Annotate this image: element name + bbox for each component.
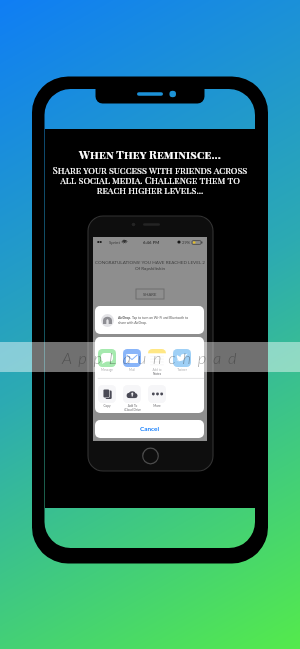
staticText: share with AirDrop. [118, 321, 147, 325]
staticText: Of Rapskiltskin [93, 265, 207, 271]
staticText: Cancel [140, 425, 160, 433]
staticText: 29% [182, 240, 191, 245]
staticText: Sprint [109, 240, 120, 245]
button[interactable]: AirDrop. [95, 306, 204, 334]
staticText: SHARE [143, 292, 157, 297]
button[interactable]: Message [98, 349, 116, 372]
staticText: 6:46 PM [143, 240, 160, 245]
staticText: AirDrop. [118, 316, 131, 320]
button[interactable]: Cancel [95, 420, 204, 438]
staticText: Copy [103, 404, 111, 408]
button[interactable]: More [148, 385, 166, 408]
staticText: Twitter [177, 368, 187, 372]
staticText: Mail [129, 368, 135, 372]
staticText: When They Reminisce... [0, 147, 300, 162]
staticText: Share your success with friends across a… [0, 164, 300, 197]
button[interactable]: Add To iCloud Drive [123, 385, 141, 412]
button[interactable]: Twitter [173, 349, 191, 372]
staticText: More [153, 404, 161, 408]
button[interactable]: Mail [123, 349, 141, 372]
staticText: CONGRATULATIONS! YOU HAVE REACHED LEVEL … [93, 259, 207, 265]
button[interactable]: SHARE [136, 289, 164, 299]
button[interactable]: Add to Notes [148, 349, 166, 376]
button[interactable]: Copy [98, 385, 116, 408]
staticText: Add to Notes [148, 368, 166, 376]
staticText: Add To iCloud Drive [124, 404, 141, 412]
staticText: Message [101, 368, 113, 372]
staticText: A p p L a u n c h p a d [62, 348, 238, 368]
staticText: Tap to turn on Wi-Fi and Bluetooth to [132, 316, 189, 320]
